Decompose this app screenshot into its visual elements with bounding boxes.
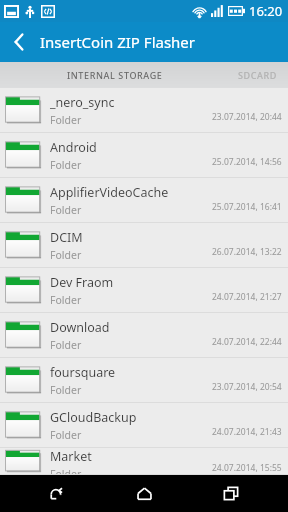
staticText: Download bbox=[50, 319, 110, 336]
staticText: 26.07.2014, 13:22 bbox=[212, 246, 282, 258]
button[interactable]: Back bbox=[27, 475, 87, 512]
staticText: Folder bbox=[50, 248, 82, 262]
button[interactable]: Download bbox=[0, 313, 288, 358]
staticText: Folder bbox=[50, 203, 82, 217]
staticText: 25.07.2014, 14:56 bbox=[212, 156, 282, 168]
staticText: ApplifierVideoCache bbox=[50, 184, 169, 201]
staticText: 25.07.2014, 16:41 bbox=[212, 201, 282, 213]
staticText: _nero_sync bbox=[50, 94, 115, 111]
button[interactable]: GCloudBackup bbox=[0, 403, 288, 448]
staticText: 23.07.2014, 20:54 bbox=[212, 381, 282, 393]
staticText: 23.07.2014, 20:44 bbox=[212, 111, 282, 123]
staticText: 16:20 bbox=[249, 2, 283, 20]
button[interactable]: ApplifierVideoCache bbox=[0, 178, 288, 223]
staticText: Folder bbox=[50, 113, 82, 127]
button[interactable]: _nero_sync bbox=[0, 88, 288, 133]
staticText: INTERNAL STORAGE bbox=[67, 69, 163, 81]
staticText: 24.07.2014, 15:55 bbox=[212, 462, 282, 474]
button[interactable]: Market bbox=[0, 448, 288, 475]
staticText: DCIM bbox=[50, 229, 83, 246]
button[interactable]: INTERNAL STORAGE bbox=[0, 62, 230, 88]
staticText: GCloudBackup bbox=[50, 409, 137, 426]
staticText: Folder bbox=[50, 383, 82, 397]
button[interactable]: Recent apps bbox=[201, 475, 261, 512]
staticText: Android bbox=[50, 139, 97, 156]
staticText: SDCARD bbox=[238, 69, 278, 81]
staticText: Dev Fraom bbox=[50, 274, 114, 291]
staticText: Folder bbox=[50, 467, 82, 474]
button[interactable]: SDCARD bbox=[228, 62, 288, 88]
staticText: Market bbox=[50, 448, 92, 465]
staticText: 24.07.2014, 21:27 bbox=[212, 291, 282, 303]
staticText: Folder bbox=[50, 338, 82, 352]
staticText: InsertCoin ZIP Flasher bbox=[40, 32, 196, 52]
staticText: 24.07.2014, 22:44 bbox=[212, 336, 282, 348]
staticText: foursquare bbox=[50, 364, 116, 381]
button[interactable]: DCIM bbox=[0, 223, 288, 268]
button[interactable]: Android bbox=[0, 133, 288, 178]
staticText: Folder bbox=[50, 428, 82, 442]
button[interactable]: Home bbox=[114, 475, 174, 512]
button[interactable]: foursquare bbox=[0, 358, 288, 403]
button[interactable]: Back bbox=[0, 22, 38, 62]
button[interactable]: Dev Fraom bbox=[0, 268, 288, 313]
staticText: Folder bbox=[50, 293, 82, 307]
staticText: Folder bbox=[50, 158, 82, 172]
staticText: 24.07.2014, 21:43 bbox=[212, 426, 282, 438]
